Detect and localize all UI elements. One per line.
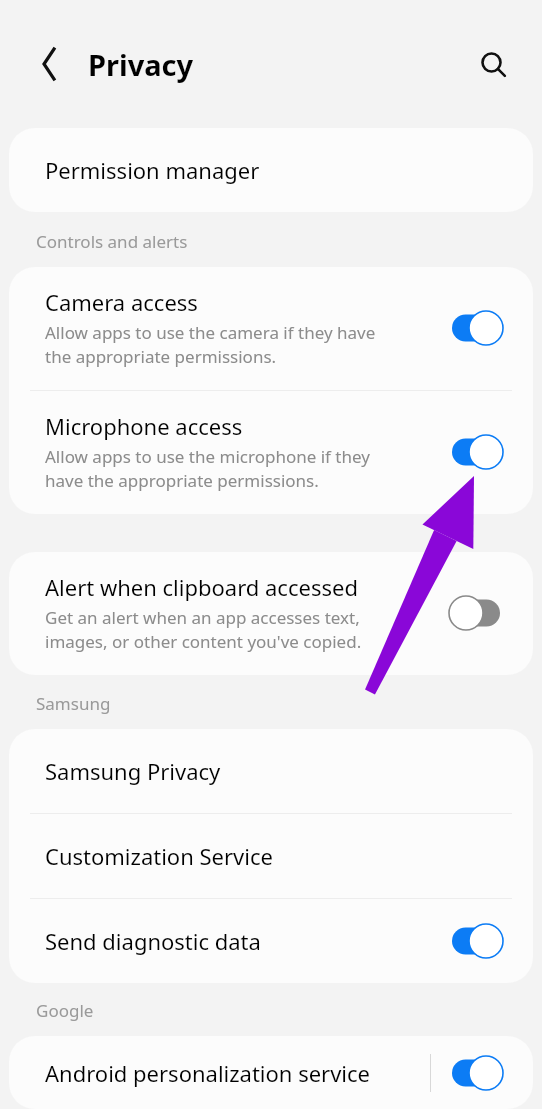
- button[interactable]: Customization Service: [9, 814, 533, 898]
- staticText: Samsung Privacy: [45, 756, 505, 786]
- staticText: Customization Service: [45, 841, 505, 871]
- button[interactable]: On: [447, 1052, 505, 1094]
- staticText: Allow apps to use the microphone if they…: [45, 445, 370, 492]
- staticText: Android personalization service: [45, 1058, 430, 1088]
- button[interactable]: On: [447, 431, 505, 473]
- button[interactable]: Samsung Privacy: [9, 729, 533, 813]
- staticText: Alert when clipboard accessed: [45, 572, 358, 602]
- button[interactable]: Camera access: [9, 267, 533, 390]
- staticText: Controls and alerts: [36, 230, 188, 253]
- button[interactable]: Microphone access: [9, 391, 533, 514]
- button[interactable]: Alert when clipboard accessed: [9, 552, 533, 675]
- staticText: Samsung: [36, 692, 111, 715]
- staticText: Send diagnostic data: [45, 926, 447, 956]
- button[interactable]: On: [447, 920, 505, 962]
- button[interactable]: Back: [26, 41, 72, 87]
- button[interactable]: Android personalization service: [9, 1036, 533, 1109]
- staticText: Camera access: [45, 287, 198, 317]
- staticText: Permission manager: [45, 155, 505, 185]
- staticText: Google: [36, 999, 94, 1022]
- button[interactable]: Send diagnostic data: [9, 899, 533, 983]
- button[interactable]: Permission manager: [9, 128, 533, 212]
- staticText: Allow apps to use the camera if they hav…: [45, 321, 376, 368]
- staticText: Get an alert when an app accesses text, …: [45, 606, 362, 653]
- button[interactable]: On: [447, 307, 505, 349]
- button[interactable]: Search: [470, 41, 516, 87]
- staticText: Privacy: [88, 45, 194, 84]
- button[interactable]: Off: [447, 592, 505, 634]
- staticText: Microphone access: [45, 411, 243, 441]
